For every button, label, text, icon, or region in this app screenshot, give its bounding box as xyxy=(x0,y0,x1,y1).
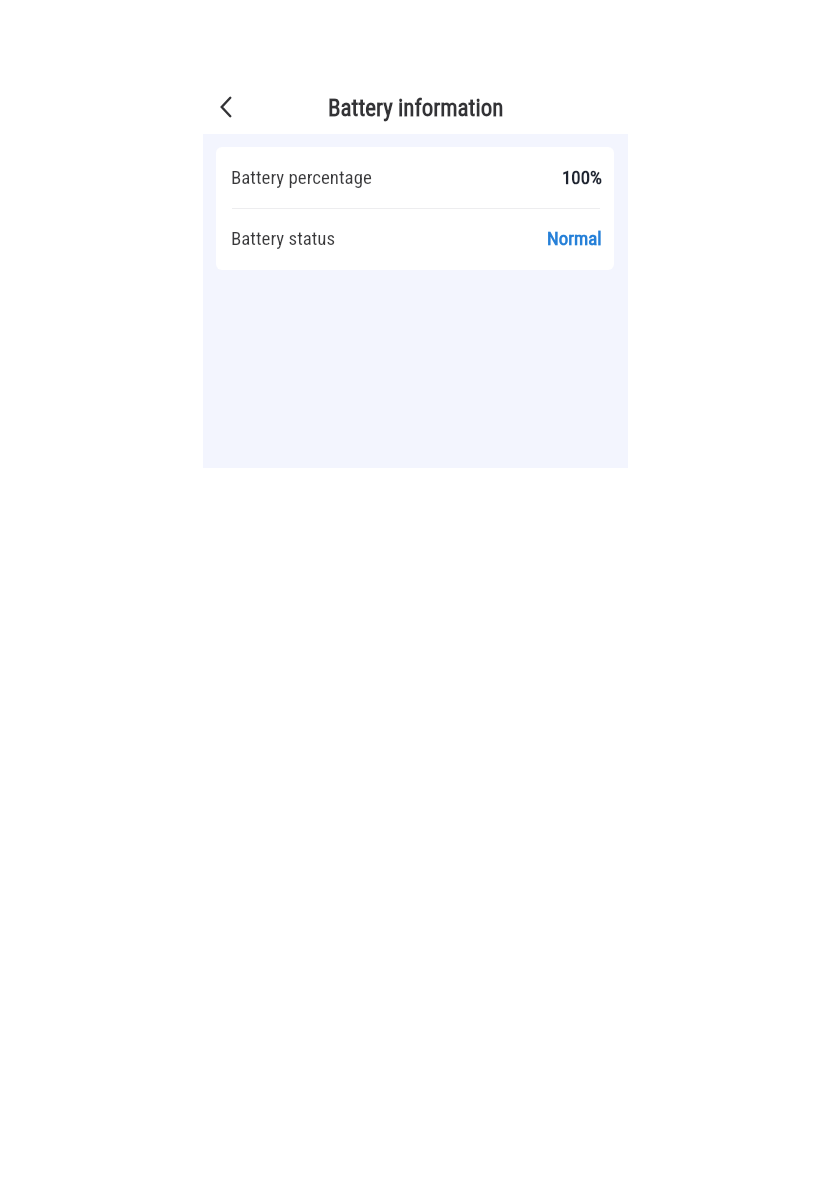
staticText: Battery percentage xyxy=(231,166,372,188)
button[interactable]: Back xyxy=(206,87,246,127)
staticText: Normal xyxy=(547,227,602,249)
staticText: Battery status xyxy=(231,227,336,249)
button[interactable]: Battery status xyxy=(216,209,614,270)
staticText: Battery information xyxy=(328,95,504,122)
staticText: 100% xyxy=(562,166,602,188)
button[interactable]: Battery percentage xyxy=(216,147,614,208)
